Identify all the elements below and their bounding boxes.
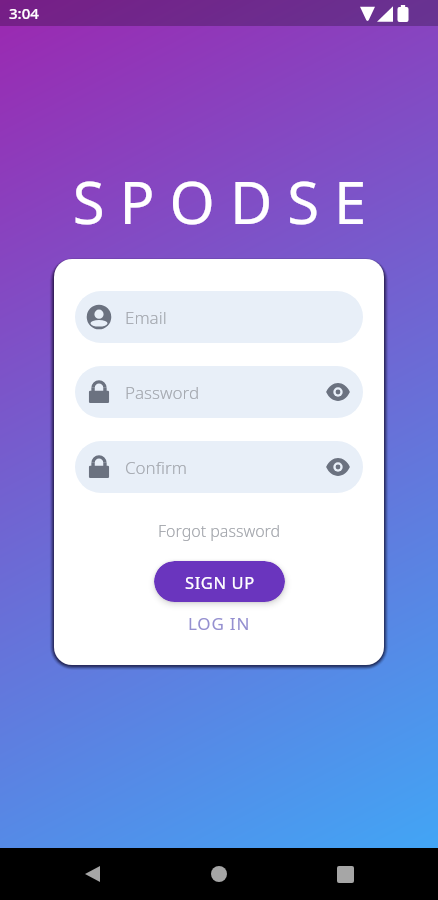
button[interactable]: Forgot password bbox=[75, 517, 363, 545]
staticText: SIGN UP bbox=[185, 571, 255, 593]
button[interactable]: Email bbox=[75, 291, 363, 343]
button[interactable]: Toggle password visibility bbox=[324, 378, 352, 406]
staticText: Password bbox=[125, 381, 200, 404]
button[interactable]: Toggle password visibility bbox=[324, 453, 352, 481]
staticText: SPODSE bbox=[8, 162, 438, 241]
staticText: Confirm bbox=[125, 456, 187, 479]
button[interactable]: Home bbox=[201, 856, 237, 892]
button[interactable]: LOG IN bbox=[75, 610, 363, 636]
button[interactable]: SIGN UP bbox=[154, 561, 285, 602]
staticText: Forgot password bbox=[158, 520, 281, 542]
staticText: Email bbox=[125, 306, 167, 329]
button[interactable]: Confirm bbox=[75, 441, 363, 493]
staticText: LOG IN bbox=[188, 612, 251, 635]
staticText: 3:04 bbox=[9, 3, 39, 23]
button[interactable]: Back bbox=[74, 856, 110, 892]
button[interactable]: Password bbox=[75, 366, 363, 418]
button[interactable]: Recent apps bbox=[327, 856, 363, 892]
